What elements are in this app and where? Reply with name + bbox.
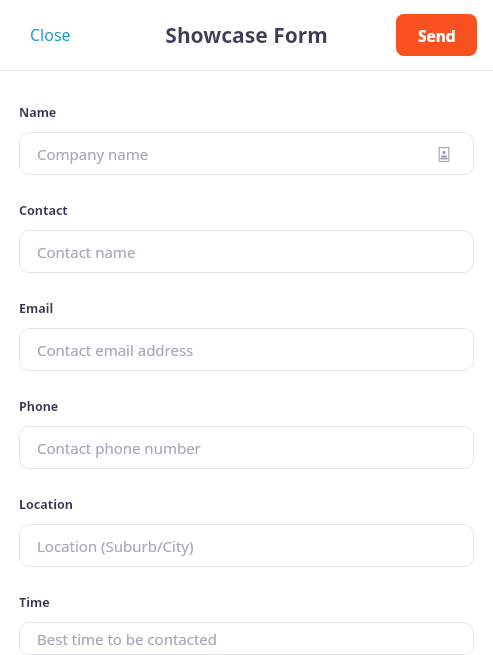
button[interactable]: Send [396, 14, 477, 56]
button[interactable]: Contact email address [19, 328, 474, 371]
staticText: Location (Suburb/City) [37, 536, 456, 556]
staticText: Email [19, 300, 54, 317]
button[interactable]: Location (Suburb/City) [19, 524, 474, 567]
staticText: Name [19, 104, 57, 121]
staticText: Time [19, 594, 50, 611]
button[interactable]: Choose from contacts [432, 142, 456, 166]
staticText: Phone [19, 398, 59, 415]
button[interactable]: Contact name [19, 230, 474, 273]
staticText: Contact email address [37, 340, 456, 360]
button[interactable]: Close [22, 18, 79, 52]
staticText: Best time to be contacted [37, 629, 456, 649]
staticText: Contact phone number [37, 438, 456, 458]
staticText: Contact name [37, 242, 456, 262]
staticText: Contact [19, 202, 68, 219]
staticText: Company name [37, 144, 432, 164]
staticText: Send [418, 25, 456, 46]
staticText: Showcase Form [0, 21, 493, 50]
button[interactable]: Best time to be contacted [19, 622, 474, 655]
staticText: Close [30, 24, 71, 46]
button[interactable]: Company name [19, 132, 474, 175]
staticText: Location [19, 496, 73, 513]
button[interactable]: Contact phone number [19, 426, 474, 469]
